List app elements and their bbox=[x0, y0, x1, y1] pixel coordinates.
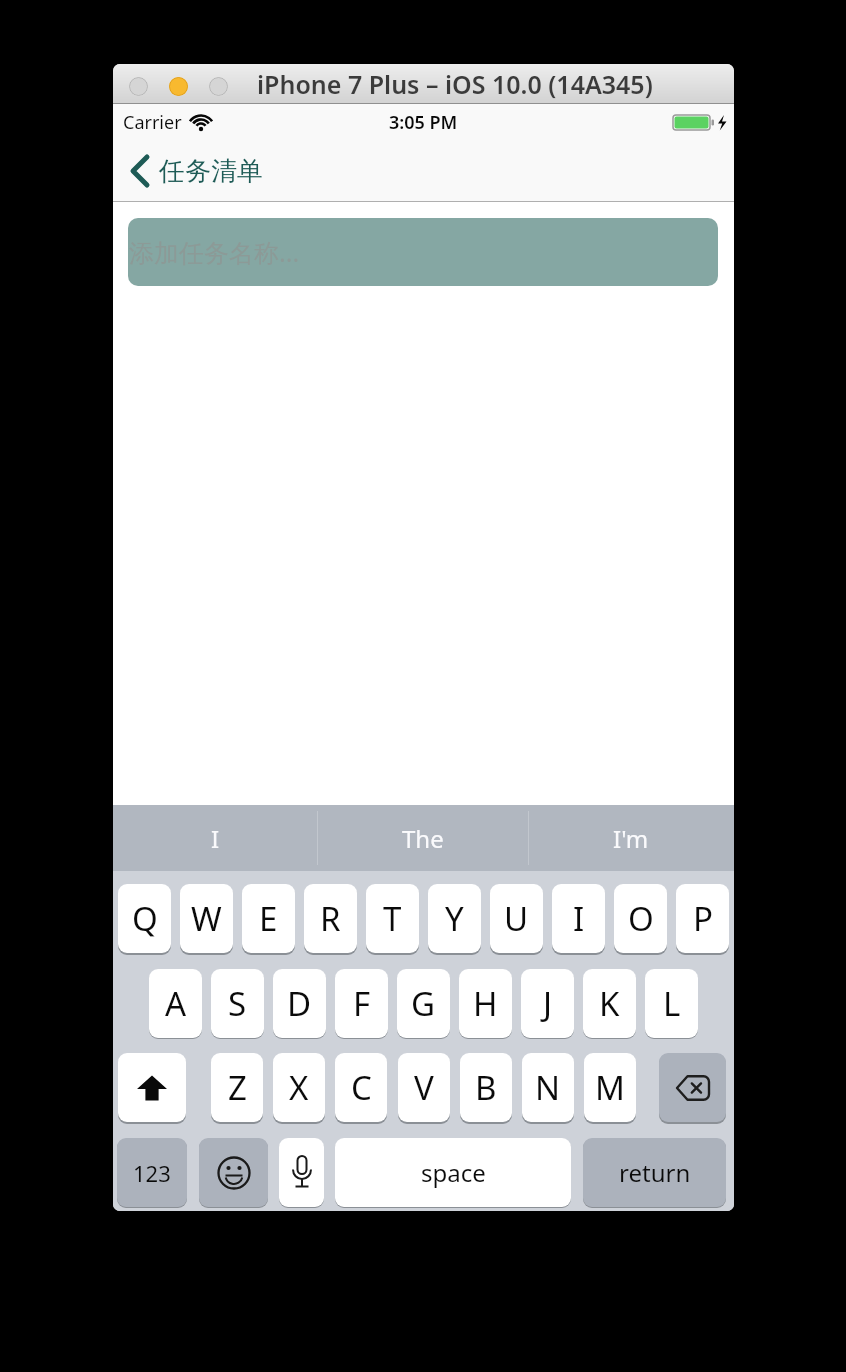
button[interactable]: F bbox=[335, 969, 388, 1038]
staticText: M bbox=[595, 1065, 625, 1110]
staticText: K bbox=[599, 981, 620, 1026]
button[interactable]: A bbox=[149, 969, 202, 1038]
staticText: I'm bbox=[613, 822, 649, 855]
button[interactable] bbox=[199, 1138, 268, 1207]
button[interactable]: E bbox=[242, 884, 295, 953]
button[interactable]: O bbox=[614, 884, 667, 953]
button[interactable]: L bbox=[645, 969, 698, 1038]
staticText: space bbox=[421, 1156, 486, 1189]
staticText: 123 bbox=[133, 1158, 171, 1188]
button[interactable] bbox=[209, 77, 228, 96]
button[interactable] bbox=[118, 1053, 186, 1122]
button[interactable]: 任务清单 bbox=[113, 140, 734, 202]
button[interactable]: Z bbox=[211, 1053, 263, 1122]
button[interactable] bbox=[169, 77, 188, 96]
staticText: C bbox=[351, 1065, 372, 1110]
button[interactable]: I bbox=[552, 884, 605, 953]
button[interactable]: 添加任务名称... bbox=[128, 218, 718, 286]
staticText: L bbox=[663, 981, 681, 1026]
staticText: F bbox=[353, 981, 371, 1026]
button[interactable]: N bbox=[522, 1053, 574, 1122]
button[interactable]: return bbox=[583, 1138, 726, 1207]
staticText: E bbox=[259, 896, 278, 941]
button[interactable]: G bbox=[397, 969, 450, 1038]
staticText: R bbox=[320, 896, 341, 941]
staticText: S bbox=[228, 981, 247, 1026]
staticText: U bbox=[504, 896, 529, 941]
staticText: iPhone 7 Plus – iOS 10.0 (14A345) bbox=[257, 67, 653, 101]
staticText: Y bbox=[445, 896, 464, 941]
staticText: X bbox=[289, 1065, 309, 1110]
button[interactable] bbox=[279, 1138, 324, 1207]
staticText: D bbox=[287, 981, 312, 1026]
staticText: A bbox=[165, 981, 187, 1026]
staticText: T bbox=[383, 896, 402, 941]
button[interactable]: Y bbox=[428, 884, 481, 953]
button[interactable]: B bbox=[460, 1053, 512, 1122]
button[interactable]: C bbox=[335, 1053, 387, 1122]
staticText: I bbox=[573, 896, 585, 941]
staticText: Z bbox=[228, 1065, 247, 1110]
staticText: O bbox=[628, 896, 654, 941]
button[interactable]: K bbox=[583, 969, 636, 1038]
staticText: V bbox=[414, 1065, 434, 1110]
button[interactable]: M bbox=[584, 1053, 636, 1122]
button[interactable] bbox=[129, 77, 148, 96]
button[interactable]: W bbox=[180, 884, 233, 953]
staticText: I bbox=[211, 822, 220, 855]
button[interactable]: I bbox=[113, 805, 317, 871]
staticText: return bbox=[619, 1156, 691, 1189]
button[interactable]: The bbox=[317, 805, 528, 871]
staticText: Carrier bbox=[123, 110, 182, 135]
button[interactable]: space bbox=[335, 1138, 571, 1207]
button[interactable]: I'm bbox=[528, 805, 734, 871]
button[interactable]: U bbox=[490, 884, 543, 953]
button[interactable]: Q bbox=[118, 884, 171, 953]
button[interactable]: 123 bbox=[117, 1138, 187, 1207]
staticText: 3:05 PM bbox=[389, 110, 458, 135]
button[interactable]: J bbox=[521, 969, 574, 1038]
staticText: 任务清单 bbox=[159, 155, 263, 188]
staticText: W bbox=[191, 896, 222, 941]
button[interactable]: D bbox=[273, 969, 326, 1038]
staticText: H bbox=[473, 981, 498, 1026]
button[interactable]: P bbox=[676, 884, 729, 953]
button[interactable] bbox=[659, 1053, 726, 1122]
button[interactable]: X bbox=[273, 1053, 325, 1122]
staticText: J bbox=[543, 981, 553, 1026]
button[interactable]: H bbox=[459, 969, 512, 1038]
button[interactable]: T bbox=[366, 884, 419, 953]
button[interactable]: V bbox=[398, 1053, 450, 1122]
staticText: The bbox=[402, 822, 444, 855]
staticText: Q bbox=[132, 896, 158, 941]
button[interactable]: S bbox=[211, 969, 264, 1038]
staticText: G bbox=[411, 981, 436, 1026]
staticText: B bbox=[475, 1065, 497, 1110]
staticText: P bbox=[693, 896, 713, 941]
staticText: N bbox=[535, 1065, 561, 1110]
button[interactable]: R bbox=[304, 884, 357, 953]
staticText: 添加任务名称... bbox=[129, 235, 300, 269]
